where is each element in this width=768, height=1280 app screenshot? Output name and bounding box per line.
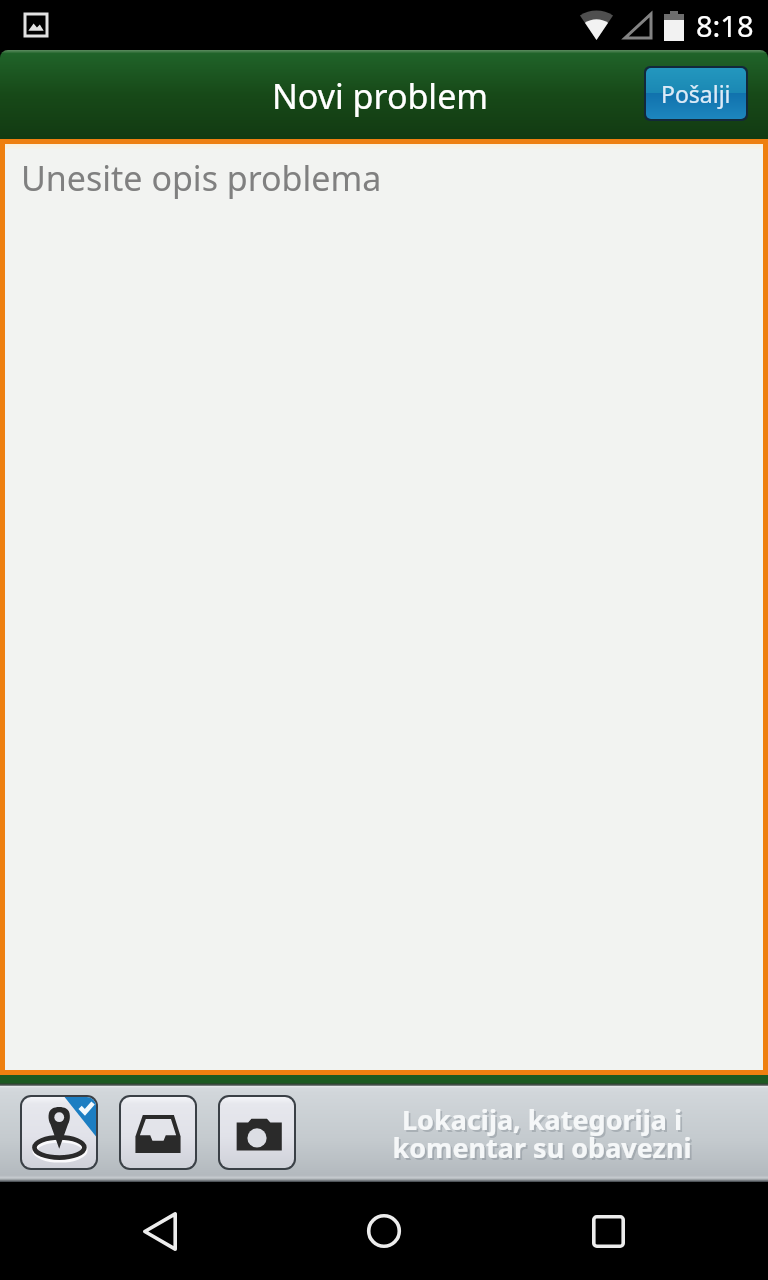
button[interactable]: Home <box>339 1186 429 1276</box>
button[interactable]: Back <box>115 1186 205 1276</box>
button[interactable]: Recents <box>563 1186 653 1276</box>
staticText: 8:18 <box>696 6 754 45</box>
staticText: Lokacija, kategorija i komentar su obave… <box>392 1101 692 1166</box>
button[interactable]: Location <box>22 1097 96 1168</box>
button[interactable]: Unesite opis problema <box>5 144 763 1070</box>
staticText: Lokacija, kategorija i komentar su obave… <box>394 1103 694 1168</box>
button[interactable]: Pošalji <box>646 68 746 119</box>
button[interactable]: Camera <box>220 1097 294 1168</box>
staticText: Novi problem <box>272 73 489 119</box>
button[interactable]: Category <box>121 1097 195 1168</box>
staticText: Unesite opis problema <box>21 155 382 201</box>
staticText: Pošalji <box>661 78 731 109</box>
